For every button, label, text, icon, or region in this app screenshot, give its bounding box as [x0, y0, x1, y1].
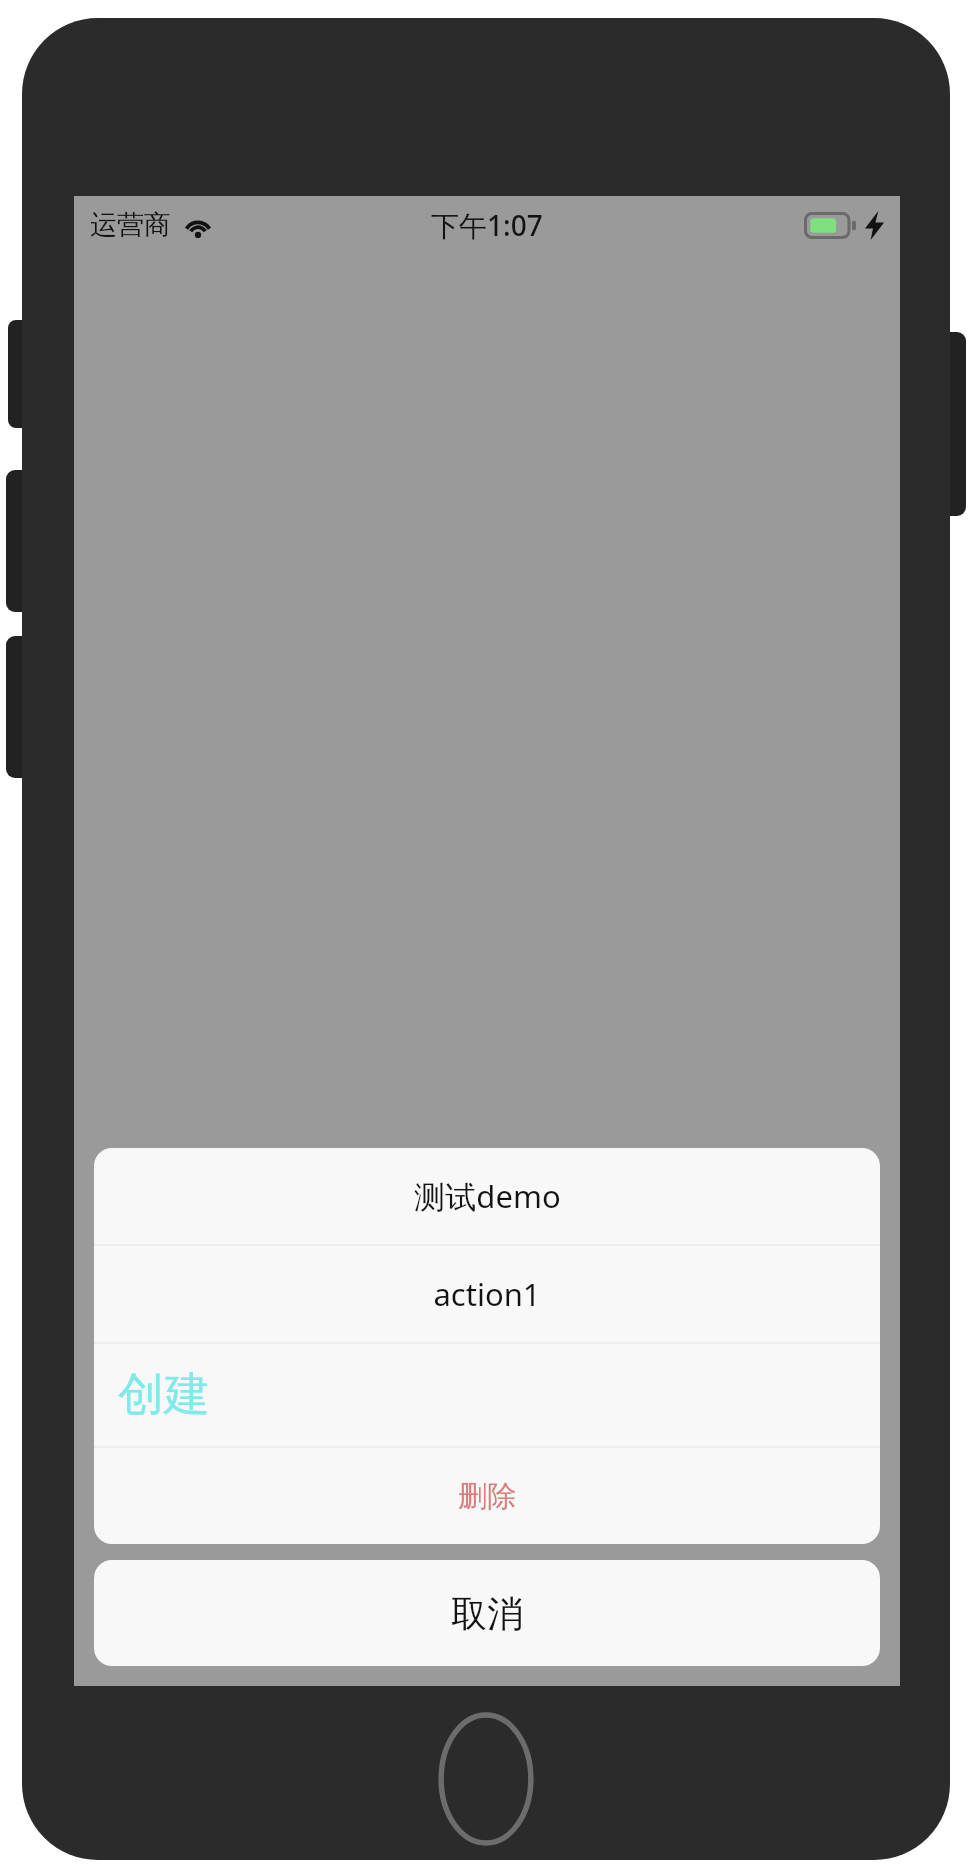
other: Home — [418, 1712, 554, 1852]
button[interactable]: action1 — [94, 1246, 880, 1342]
button[interactable]: 取消 — [94, 1560, 880, 1666]
staticText: 删除 — [458, 1478, 516, 1515]
button[interactable]: 删除 — [94, 1448, 880, 1544]
other: Volume down — [6, 636, 32, 778]
button[interactable]: 创建 — [94, 1344, 880, 1446]
button[interactable]: 测试demo — [94, 1148, 880, 1244]
other: Volume up — [6, 470, 32, 612]
staticText: 创建 — [118, 1366, 210, 1424]
other: Silent switch — [8, 320, 32, 428]
staticText: action1 — [433, 1273, 541, 1315]
staticText: 测试demo — [414, 1175, 561, 1217]
staticText: 取消 — [451, 1591, 523, 1636]
staticText: 运营商 — [90, 208, 171, 242]
staticText: 下午1:07 — [431, 206, 543, 244]
other: Power — [940, 332, 966, 516]
